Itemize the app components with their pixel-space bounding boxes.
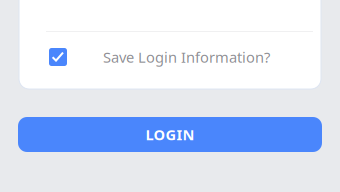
staticText: LOGIN — [145, 125, 194, 144]
button[interactable]: Save Login Information? — [19, 39, 321, 75]
button[interactable]: LOGIN — [18, 117, 322, 152]
staticText: Save Login Information? — [103, 47, 270, 67]
